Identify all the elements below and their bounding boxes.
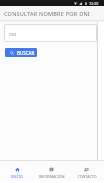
staticText: BUSCAR bbox=[17, 50, 35, 56]
staticText: CONSULTAR NOMBRE POR DNI bbox=[4, 10, 90, 17]
button[interactable]: Informacion bbox=[34, 161, 69, 181]
staticText: INFORMACIÓN bbox=[38, 174, 65, 179]
button[interactable]: BUSCAR bbox=[5, 48, 37, 57]
staticText: 12:30 bbox=[89, 1, 99, 6]
button[interactable]: Contacto bbox=[69, 161, 104, 181]
button[interactable]: DNI bbox=[4, 24, 97, 42]
button[interactable]: Inicio bbox=[0, 161, 34, 181]
staticText: INICIO bbox=[11, 174, 23, 179]
staticText: DNI bbox=[9, 32, 17, 37]
staticText: CONTACTO bbox=[77, 174, 97, 179]
